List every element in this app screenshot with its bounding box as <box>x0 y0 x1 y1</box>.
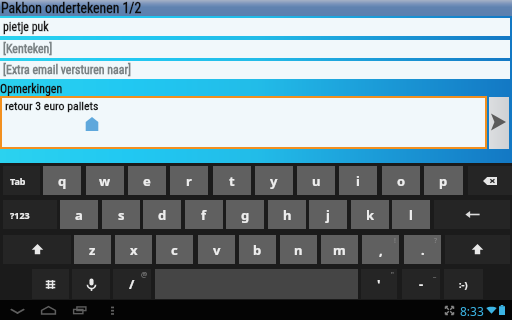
staticText: ? <box>434 236 438 246</box>
staticText: z <box>89 241 96 259</box>
staticText: n <box>294 241 303 259</box>
button[interactable]: o <box>382 166 420 195</box>
button[interactable]: p <box>424 166 463 195</box>
button[interactable]: b <box>239 235 276 264</box>
staticText: :-) <box>459 278 468 290</box>
staticText: . <box>421 241 425 259</box>
button[interactable]: Recent apps <box>66 300 94 320</box>
staticText: d <box>158 206 167 224</box>
button[interactable]: s <box>102 200 140 229</box>
staticText: e <box>143 172 151 190</box>
button[interactable]: - <box>402 269 440 299</box>
button[interactable]: More options <box>100 300 124 320</box>
button[interactable]: u <box>297 166 335 195</box>
button[interactable]: m <box>321 235 358 264</box>
staticText: " <box>391 270 394 280</box>
button[interactable]: ?123 <box>3 200 57 229</box>
staticText: t <box>229 172 235 190</box>
button[interactable]: c <box>156 235 193 264</box>
staticText: o <box>397 172 406 190</box>
staticText: pietje puk <box>3 20 49 34</box>
staticText: a <box>75 206 83 224</box>
button[interactable]: Shift <box>3 235 71 264</box>
staticText: g <box>241 206 250 224</box>
staticText: Pakbon ondertekenen 1/2 <box>1 0 142 16</box>
staticText: _ <box>433 270 437 280</box>
staticText: x <box>130 241 138 259</box>
button[interactable]: q <box>43 166 81 195</box>
staticText: ?123 <box>10 209 30 221</box>
staticText: Tab <box>10 175 26 187</box>
staticText: q <box>58 172 67 190</box>
button[interactable]: pietje puk <box>0 18 510 36</box>
button[interactable]: 8:33 <box>458 300 485 320</box>
button[interactable]: d <box>143 200 181 229</box>
button[interactable]: [Kenteken] <box>0 40 510 58</box>
button[interactable]: :-) <box>444 269 483 299</box>
button[interactable]: h <box>268 200 306 229</box>
button[interactable]: Wi-Fi <box>484 300 498 320</box>
button[interactable]: Send <box>489 97 509 149</box>
button[interactable]: ' <box>361 269 397 299</box>
button[interactable]: e <box>128 166 166 195</box>
staticText: y <box>270 172 278 190</box>
staticText: v <box>213 241 221 259</box>
staticText: j <box>326 206 330 224</box>
staticText: s <box>118 206 125 224</box>
staticText: b <box>253 241 262 259</box>
staticText: m <box>333 241 346 259</box>
staticText: c <box>171 241 178 259</box>
button[interactable]: , <box>362 235 399 264</box>
staticText: h <box>283 206 292 224</box>
staticText: i <box>356 172 360 190</box>
button[interactable]: x <box>115 235 152 264</box>
button[interactable]: w <box>86 166 124 195</box>
button[interactable]: v <box>198 235 235 264</box>
button[interactable]: Home <box>34 300 62 320</box>
button[interactable]: n <box>280 235 317 264</box>
staticText: - <box>419 275 424 293</box>
button[interactable]: r <box>170 166 208 195</box>
staticText: r <box>186 172 192 190</box>
button[interactable]: Voice input <box>72 269 110 299</box>
staticText: u <box>312 172 321 190</box>
button[interactable]: t <box>213 166 251 195</box>
button[interactable]: Keyboard settings <box>32 269 69 299</box>
staticText: f <box>201 206 207 224</box>
button[interactable]: Enter <box>434 200 510 229</box>
button[interactable]: / <box>113 269 151 299</box>
button[interactable]: Fullscreen <box>440 300 459 320</box>
button[interactable]: i <box>339 166 377 195</box>
staticText: w <box>99 172 111 190</box>
staticText: Opmerkingen <box>0 82 63 96</box>
button[interactable]: retour 3 euro pallets <box>2 98 485 147</box>
button[interactable]: j <box>309 200 347 229</box>
staticText: [Extra email versturen naar] <box>3 63 132 77</box>
button[interactable]: [Extra email versturen naar] <box>0 61 510 79</box>
staticText: k <box>366 206 375 224</box>
button[interactable]: Hide keyboard <box>3 300 31 320</box>
button[interactable]: g <box>226 200 264 229</box>
button[interactable]: Tab <box>3 166 40 195</box>
button[interactable]: l <box>392 200 430 229</box>
button[interactable]: Pakbon ondertekenen 1/2 <box>0 0 512 16</box>
button[interactable]: f <box>185 200 223 229</box>
staticText: ' <box>377 275 381 293</box>
staticText: l <box>409 206 413 224</box>
staticText: / <box>129 275 135 293</box>
staticText: ! <box>394 236 396 246</box>
button[interactable]: y <box>255 166 293 195</box>
button[interactable]: Shift <box>445 235 510 264</box>
staticText: [Kenteken] <box>3 42 53 56</box>
button[interactable]: . <box>404 235 441 264</box>
staticText: p <box>439 172 448 190</box>
button[interactable]: Battery <box>496 300 508 320</box>
button[interactable]: k <box>351 200 389 229</box>
staticText: 8:33 <box>460 303 484 319</box>
button[interactable]: z <box>74 235 111 264</box>
button[interactable]: Backspace <box>468 166 512 195</box>
staticText: @ <box>141 270 148 280</box>
staticText: retour 3 euro pallets <box>5 99 99 113</box>
button[interactable]: a <box>60 200 98 229</box>
